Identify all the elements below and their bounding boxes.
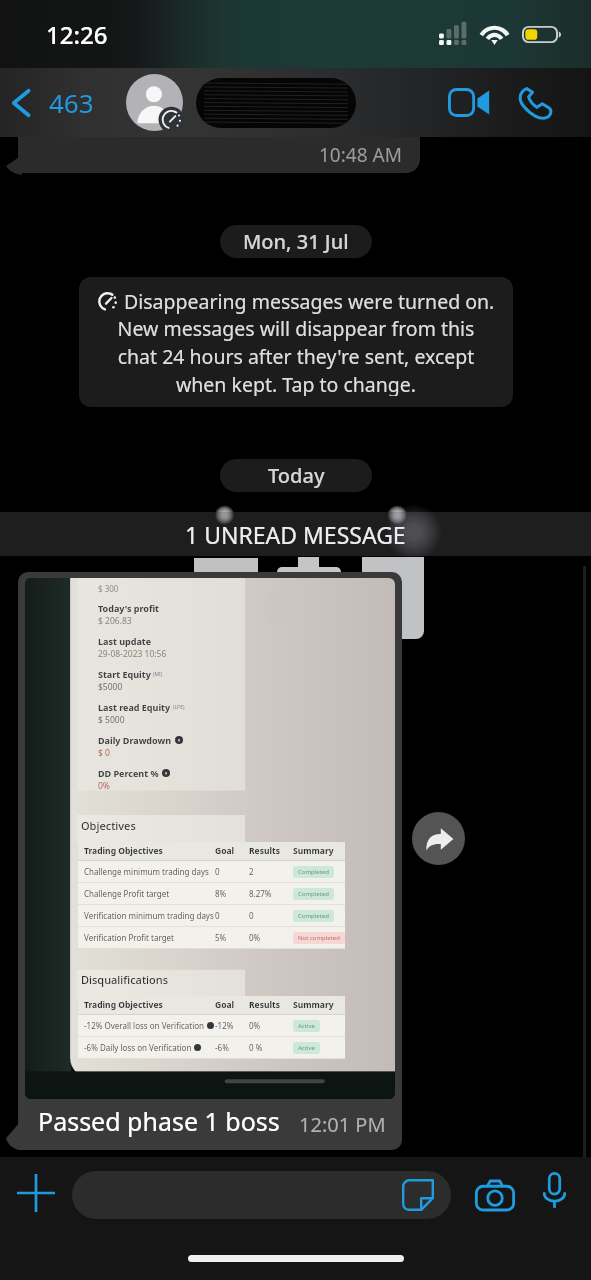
staticText: -6% Daily loss on Verification <box>84 1042 192 1053</box>
staticText: $5000 <box>98 681 123 693</box>
staticText: 463 <box>49 85 94 120</box>
staticText: Challenge minimum trading days <box>84 866 209 877</box>
staticText: Results <box>249 845 293 857</box>
staticText: $ 206.83 <box>98 615 132 627</box>
button[interactable]: $ 300 <box>18 572 402 1150</box>
staticText: Not completed <box>298 934 340 942</box>
staticText: $ 300 <box>98 583 119 594</box>
staticText: 0 <box>249 910 293 921</box>
staticText: Results <box>249 999 293 1011</box>
staticText: 29-08-2023 10:56 <box>98 648 167 660</box>
button[interactable]: Voice call <box>503 68 565 137</box>
staticText: Active <box>298 1022 315 1030</box>
staticText: 10:48 AM <box>319 142 402 168</box>
staticText: Daily Drawdown <box>98 734 172 746</box>
staticText: 8.27% <box>249 888 293 899</box>
button[interactable]: 463 <box>0 73 102 132</box>
staticText: Disappearing messages were turned on. <box>124 288 495 315</box>
staticText: 0 <box>215 910 249 921</box>
staticText: 12:26 <box>46 18 108 51</box>
staticText: Today's profit <box>98 602 159 614</box>
button[interactable]: Disappearing messages were turned on. <box>79 277 513 407</box>
staticText: Challenge Profit target <box>84 888 170 899</box>
staticText: Completed <box>298 912 329 920</box>
button[interactable]: Camera <box>467 1167 523 1223</box>
button[interactable]: Stickers <box>72 1171 451 1219</box>
staticText: (MI) <box>153 671 163 678</box>
staticText: 0% <box>249 932 293 943</box>
button[interactable]: Forward <box>412 812 465 865</box>
staticText: Mon, 31 Jul <box>243 228 349 255</box>
staticText: Goal <box>215 845 249 857</box>
button[interactable] <box>126 74 356 131</box>
staticText: -12% <box>215 1020 249 1031</box>
staticText: Trading Objectives <box>84 999 215 1011</box>
staticText: -12% Overall loss on Verification <box>84 1020 205 1031</box>
staticText: New messages will disappear from this ch… <box>100 315 492 396</box>
staticText: Objectives <box>81 818 136 833</box>
staticText: Verification minimum trading days <box>84 910 214 921</box>
staticText: Last update <box>98 635 152 647</box>
staticText: 1 UNREAD MESSAGE <box>185 519 406 550</box>
staticText: Summary <box>293 999 334 1011</box>
staticText: Goal <box>215 999 249 1011</box>
staticText: Disqualifications <box>81 972 169 987</box>
staticText: 0% <box>98 780 110 792</box>
staticText: $ 0 <box>98 747 110 759</box>
staticText: 0 % <box>249 1042 293 1053</box>
button[interactable]: Video call <box>435 68 503 137</box>
staticText: DD Percent % <box>98 767 159 779</box>
staticText: 0% <box>249 1020 293 1031</box>
staticText: Today <box>268 462 325 489</box>
staticText: Trading Objectives <box>84 845 215 857</box>
button[interactable]: Voice message <box>529 1165 579 1215</box>
staticText: 2 <box>249 866 293 877</box>
staticText: Active <box>298 1044 315 1052</box>
staticText: 8% <box>215 888 249 899</box>
staticText: Completed <box>298 868 329 876</box>
staticText: Completed <box>298 890 329 898</box>
staticText: 12:01 PM <box>299 1111 386 1138</box>
staticText: 0 <box>215 866 249 877</box>
button[interactable]: Attach <box>8 1165 64 1221</box>
staticText: Passed phase 1 boss <box>38 1104 280 1138</box>
staticText: Summary <box>293 845 334 857</box>
button[interactable]: Stickers <box>400 1177 436 1213</box>
staticText: -6% <box>215 1042 249 1053</box>
staticText: 5% <box>215 932 249 943</box>
staticText: $ 5000 <box>98 714 125 726</box>
staticText: Verification Profit target <box>84 932 175 943</box>
staticText: Start Equity <box>98 668 151 680</box>
staticText: Last read Equity <box>98 701 171 713</box>
staticText: (LPE) <box>173 704 185 711</box>
